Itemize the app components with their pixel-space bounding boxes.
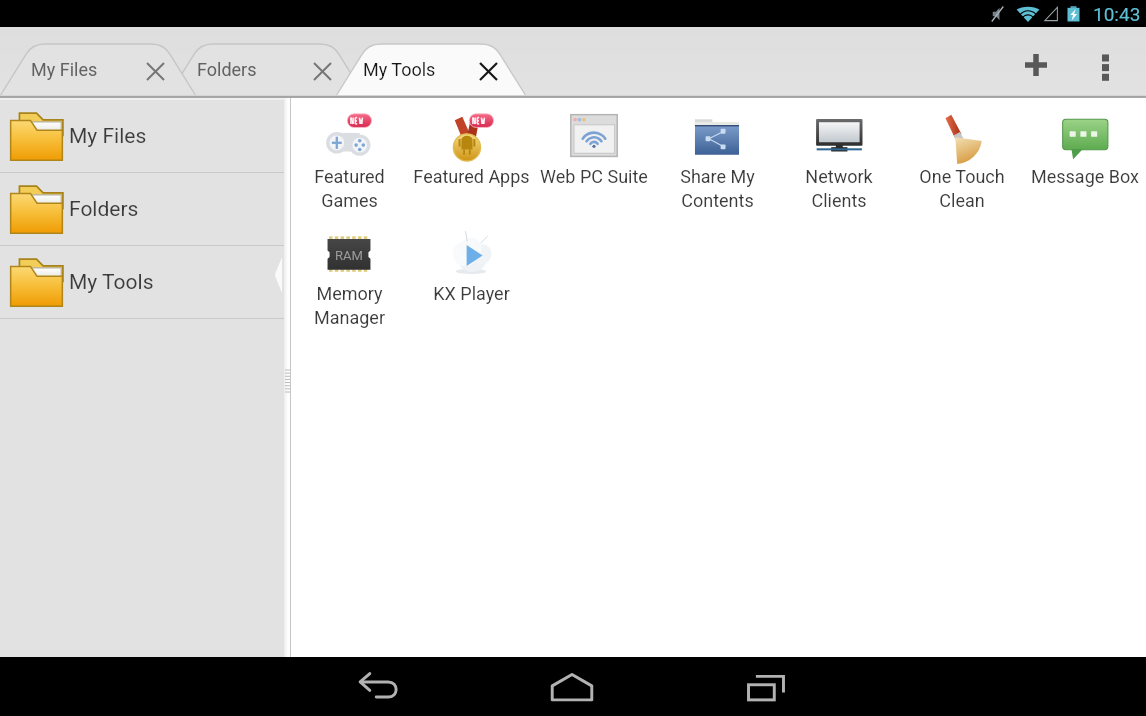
staticText: My Files <box>69 124 147 149</box>
staticText: One Touch Clean <box>919 166 1005 211</box>
staticText: Featured Games <box>314 166 385 211</box>
staticText: Featured Apps <box>413 166 530 187</box>
button[interactable]: Network Clients <box>778 98 900 215</box>
button[interactable]: Folders <box>177 44 346 98</box>
button[interactable]: Recents <box>730 657 802 716</box>
button[interactable]: Home <box>536 657 608 716</box>
staticText: KX Player <box>433 283 510 304</box>
staticText: RAM <box>335 248 363 263</box>
staticText: Memory Manager <box>314 283 385 328</box>
staticText: Folders <box>69 197 139 222</box>
staticText: Web PC Suite <box>540 166 648 187</box>
button[interactable]: RAM <box>288 215 410 332</box>
button[interactable]: My Tools <box>0 246 284 318</box>
staticText: Network Clients <box>805 166 873 211</box>
button[interactable]: Close My Files <box>137 53 173 89</box>
staticText: Folders <box>197 59 257 80</box>
button[interactable]: Message Box <box>1024 98 1146 215</box>
button[interactable]: Share My Contents <box>656 98 778 215</box>
button[interactable]: Featured Games <box>288 98 410 215</box>
staticText: Message Box <box>1031 166 1139 187</box>
staticText: Share My Contents <box>680 166 755 211</box>
button[interactable]: Folders <box>0 173 284 245</box>
button[interactable]: More options <box>1079 39 1131 91</box>
button[interactable]: One Touch Clean <box>901 98 1023 215</box>
button[interactable]: Close Folders <box>304 53 340 89</box>
button[interactable]: My Tools <box>343 44 512 98</box>
button[interactable]: My Files <box>0 100 284 172</box>
button[interactable]: Featured Apps <box>410 98 532 215</box>
button[interactable]: KX Player <box>410 215 532 332</box>
button[interactable]: Back <box>343 657 415 716</box>
staticText: My Tools <box>69 270 154 295</box>
button[interactable]: New tab <box>1007 36 1065 94</box>
button[interactable]: My Files <box>11 44 179 98</box>
staticText: 10:43 <box>1093 3 1141 25</box>
staticText: My Files <box>31 59 98 80</box>
button[interactable]: Close My Tools <box>470 53 506 89</box>
staticText: My Tools <box>363 59 436 80</box>
button[interactable]: Web PC Suite <box>533 98 655 215</box>
